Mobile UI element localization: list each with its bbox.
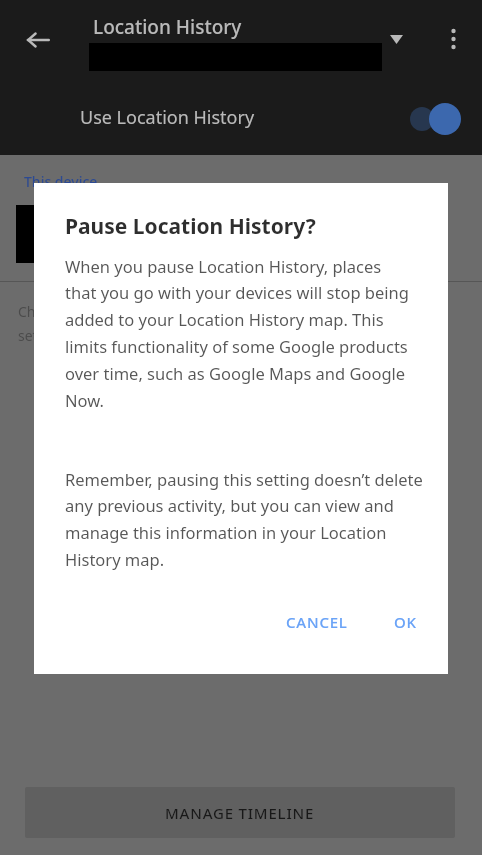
- staticText: OK: [394, 612, 417, 632]
- button[interactable]: Navigate up: [17, 19, 59, 61]
- staticText: Check: [18, 302, 58, 321]
- button[interactable]: OK: [381, 601, 430, 643]
- button[interactable]: Use Location History: [0, 80, 482, 155]
- button[interactable]: More options: [433, 19, 473, 59]
- staticText: Pause Location History?: [65, 212, 316, 241]
- staticText: This device: [24, 172, 98, 191]
- staticText: CANCEL: [286, 612, 348, 632]
- staticText: setti: [18, 326, 47, 345]
- button[interactable]: CANCEL: [273, 601, 361, 643]
- staticText: Remember, pausing this setting doesn’t d…: [65, 468, 437, 571]
- staticText: Location History: [93, 14, 242, 40]
- button[interactable]: Choose account: [377, 20, 415, 58]
- staticText: Use Location History: [80, 105, 255, 130]
- staticText: MANAGE TIMELINE: [165, 803, 315, 823]
- staticText: When you pause Location History, places …: [65, 255, 415, 412]
- button[interactable]: MANAGE TIMELINE: [25, 787, 455, 838]
